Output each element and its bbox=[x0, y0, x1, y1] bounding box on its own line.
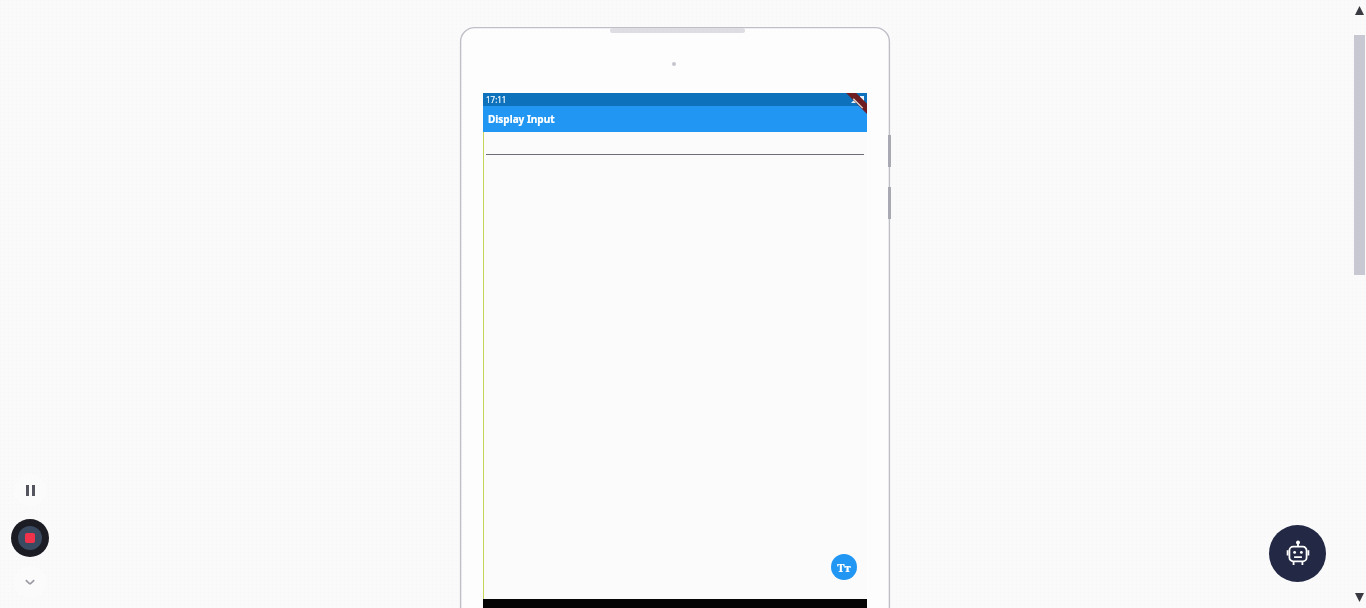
button[interactable]: Format text bbox=[831, 554, 857, 580]
button[interactable]: Pause bbox=[14, 474, 46, 506]
staticText: Display Input bbox=[488, 112, 555, 126]
button[interactable]: Stop recording bbox=[11, 519, 49, 557]
button[interactable]: Assistant bot bbox=[1269, 525, 1326, 582]
staticText: Tт bbox=[837, 560, 851, 575]
button[interactable]: Collapse bbox=[14, 566, 46, 598]
button[interactable]: Scroll down bbox=[1355, 593, 1364, 602]
button[interactable]: Scroll up bbox=[1355, 6, 1364, 15]
staticText: 17:11 bbox=[486, 94, 507, 105]
